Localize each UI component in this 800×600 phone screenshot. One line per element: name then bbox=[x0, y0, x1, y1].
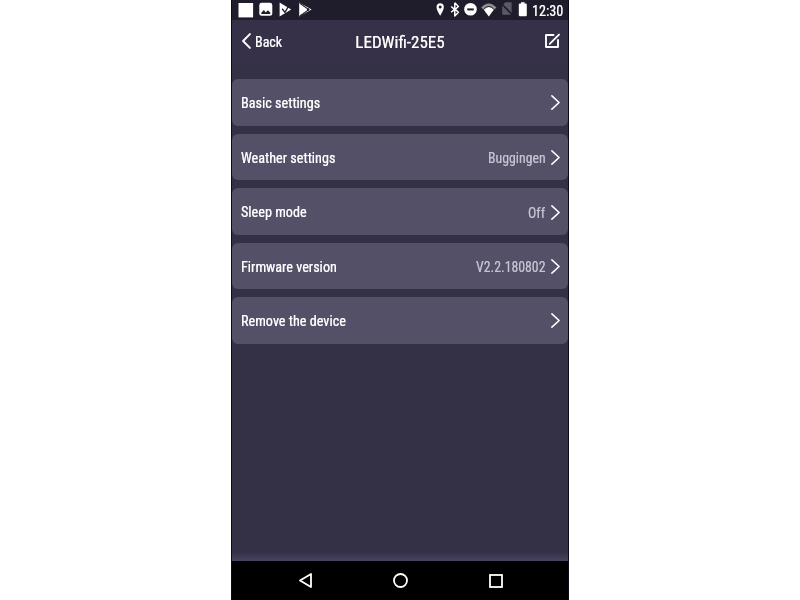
staticText: Firmware version bbox=[241, 259, 337, 276]
staticText: Sleep mode bbox=[241, 204, 307, 221]
staticText: V2.2.180802 bbox=[476, 259, 546, 275]
staticText: Off bbox=[528, 205, 546, 221]
staticText: Back bbox=[255, 34, 283, 50]
button[interactable]: Remove the device bbox=[232, 297, 568, 344]
staticText: 12:30 bbox=[532, 3, 564, 20]
staticText: Remove the device bbox=[241, 313, 346, 330]
button[interactable]: Basic settings bbox=[232, 79, 568, 126]
button[interactable]: Firmware version bbox=[232, 243, 568, 289]
button[interactable]: Back bbox=[283, 561, 327, 600]
button[interactable]: Sleep mode bbox=[232, 188, 568, 235]
button[interactable]: Recent apps bbox=[474, 561, 518, 600]
button[interactable]: Home bbox=[378, 561, 422, 600]
button[interactable]: Edit name bbox=[539, 28, 565, 54]
staticText: Buggingen bbox=[488, 150, 546, 166]
staticText: LEDWifi-25E5 bbox=[355, 32, 445, 52]
button[interactable]: Weather settings bbox=[232, 134, 568, 180]
staticText: Weather settings bbox=[241, 150, 336, 167]
button[interactable]: Back bbox=[239, 28, 286, 54]
staticText: Basic settings bbox=[241, 95, 321, 112]
